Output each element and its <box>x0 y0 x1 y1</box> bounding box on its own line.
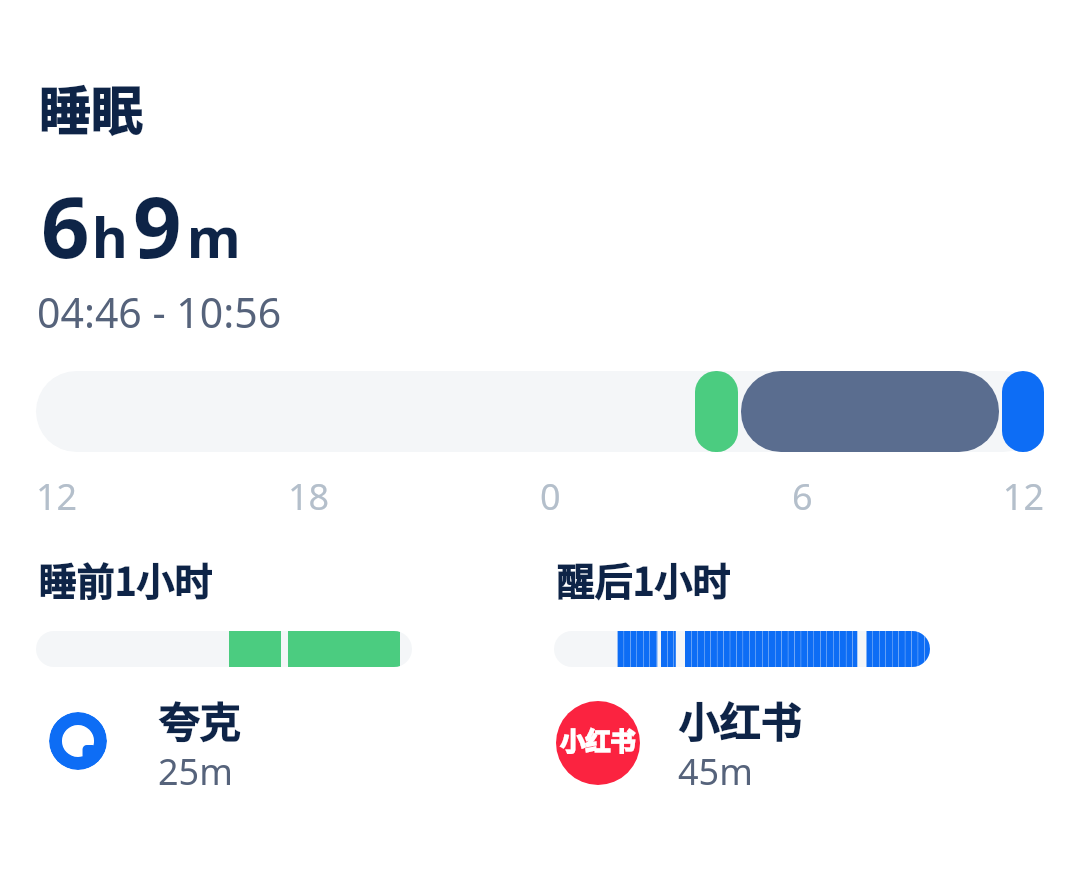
staticText: 12 <box>944 472 1044 521</box>
button[interactable]: 睡眠时间轴 <box>0 371 1080 452</box>
staticText: 9 <box>133 167 182 283</box>
staticText: 6 <box>792 472 813 521</box>
other: 夸克 <box>49 712 107 770</box>
staticText: 0 <box>540 472 561 521</box>
staticText: 45m <box>678 747 753 796</box>
staticText: 睡眠 <box>38 71 143 146</box>
staticText: 18 <box>288 472 330 521</box>
staticText: 夸克 <box>158 690 240 749</box>
staticText: h <box>92 199 128 274</box>
button[interactable]: 醒后1小时 使用时长 <box>554 631 930 667</box>
staticText: 睡前1小时 <box>38 552 212 607</box>
button[interactable]: 小红书 <box>554 694 930 792</box>
staticText: 12 <box>36 472 78 521</box>
staticText: 小红书 <box>678 690 801 749</box>
staticText: 醒后1小时 <box>556 552 730 607</box>
button[interactable]: 夸克 <box>36 694 412 792</box>
staticText: 25m <box>158 747 233 796</box>
staticText: 6 <box>41 167 90 283</box>
button[interactable]: 睡前1小时 使用时长 <box>36 631 412 667</box>
other: 小红书 <box>556 701 640 785</box>
staticText: 小红书 <box>560 722 636 758</box>
staticText: 04:46 - 10:56 <box>37 284 282 340</box>
staticText: m <box>187 199 241 274</box>
